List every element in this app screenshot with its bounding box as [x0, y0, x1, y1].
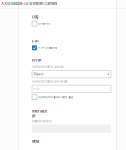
staticText: IP: [32, 114, 35, 118]
staticText: defa: [32, 139, 39, 143]
staticText: Log: [32, 15, 38, 19]
button[interactable]: ✓: [32, 45, 57, 51]
staticText: Interface: [32, 109, 47, 113]
staticText: Authentication policy ssh: [32, 80, 68, 83]
button[interactable]: Enabled: [32, 21, 50, 27]
staticText: HTTP: [32, 58, 41, 63]
staticText: ✓: [32, 45, 36, 50]
staticText: Authentication policy: [32, 65, 63, 68]
staticText: System device: [32, 120, 52, 123]
staticText: Authentication with app: [38, 96, 73, 99]
staticText: Enabled: [38, 22, 50, 25]
staticText: Digest: [34, 72, 44, 76]
button[interactable]: Authentication with app: [32, 94, 73, 100]
staticText: FTP: [32, 39, 38, 43]
staticText: FTP Enabled: [38, 46, 57, 49]
staticText: ▾: [107, 72, 109, 76]
button[interactable]: Digest: [32, 70, 111, 78]
staticText: AXIS M3026-LE Network Camera: [1, 1, 57, 6]
staticText: ssh: [34, 87, 40, 91]
